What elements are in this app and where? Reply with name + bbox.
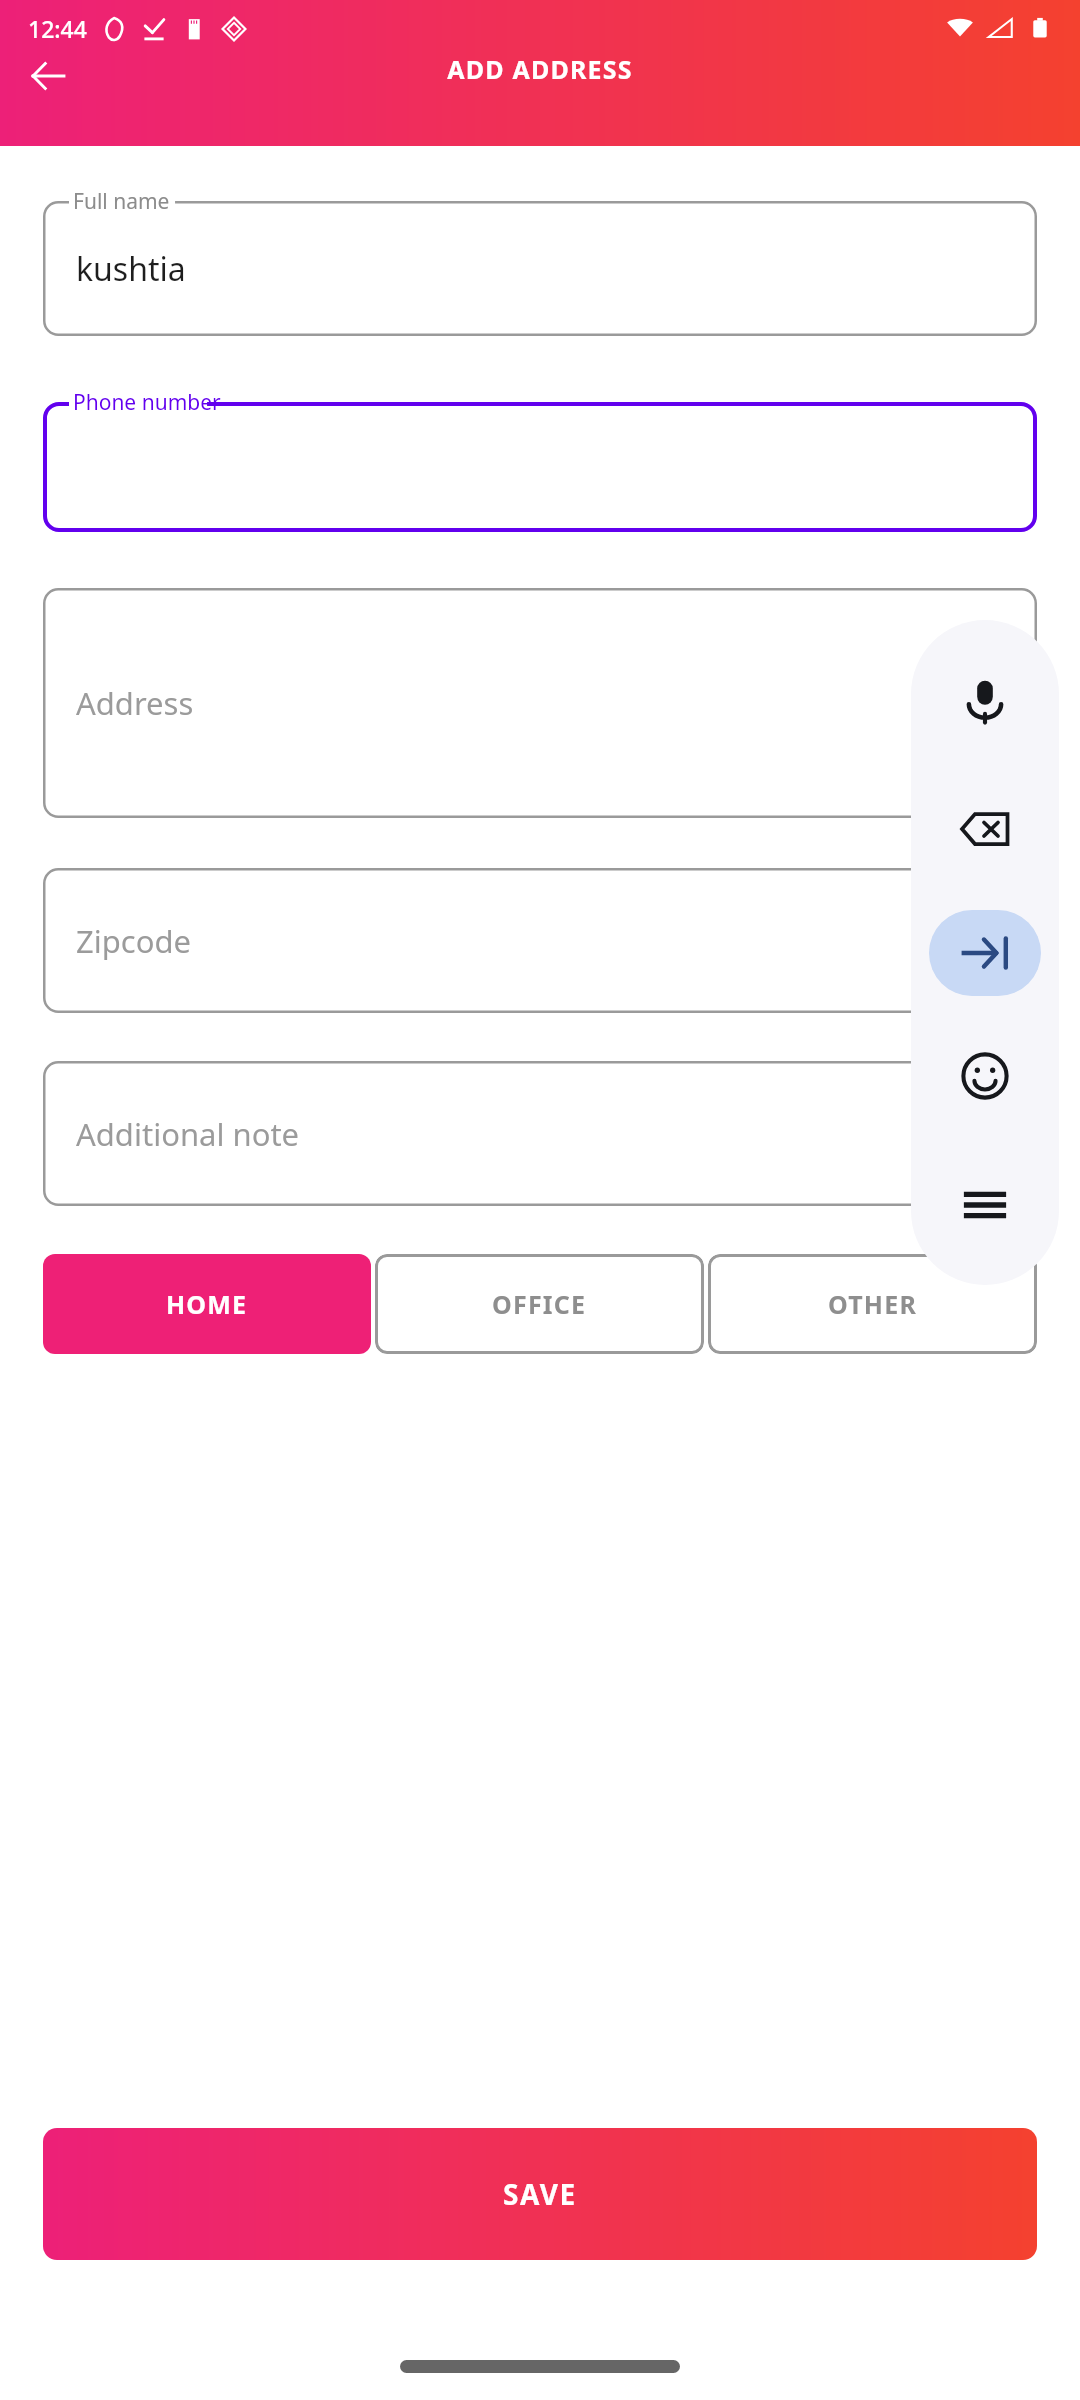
staticText: Address	[76, 682, 194, 724]
button[interactable]: Back	[18, 46, 78, 106]
staticText: SAVE	[503, 2175, 577, 2213]
button[interactable]: OTHER	[708, 1254, 1037, 1354]
staticText: ADD ADDRESS	[0, 52, 1080, 86]
button[interactable]: Zipcode	[43, 868, 1037, 1013]
button[interactable]: SAVE	[43, 2128, 1037, 2260]
staticText: Phone number	[73, 388, 221, 417]
button[interactable]: Next field	[929, 910, 1041, 996]
staticText: HOME	[166, 1287, 248, 1321]
button[interactable]: Address	[43, 588, 1037, 818]
button[interactable]: Keyboard menu	[937, 1157, 1033, 1253]
button[interactable]: HOME	[43, 1254, 371, 1354]
button[interactable]: Voice input	[937, 653, 1033, 749]
staticText: OTHER	[828, 1287, 917, 1321]
staticText: Full name	[73, 187, 170, 216]
staticText: kushtia	[76, 247, 186, 291]
button[interactable]: Emoji	[937, 1028, 1033, 1124]
staticText: Additional note	[76, 1113, 300, 1155]
staticText: OFFICE	[492, 1287, 587, 1321]
button[interactable]: Phone number	[43, 402, 1037, 532]
button[interactable]: OFFICE	[375, 1254, 704, 1354]
button[interactable]: Backspace	[937, 781, 1033, 877]
button[interactable]: Additional note	[43, 1061, 1037, 1206]
button[interactable]: Full name	[43, 201, 1037, 336]
staticText: Zipcode	[76, 920, 191, 962]
staticText: 12:44	[28, 13, 87, 44]
